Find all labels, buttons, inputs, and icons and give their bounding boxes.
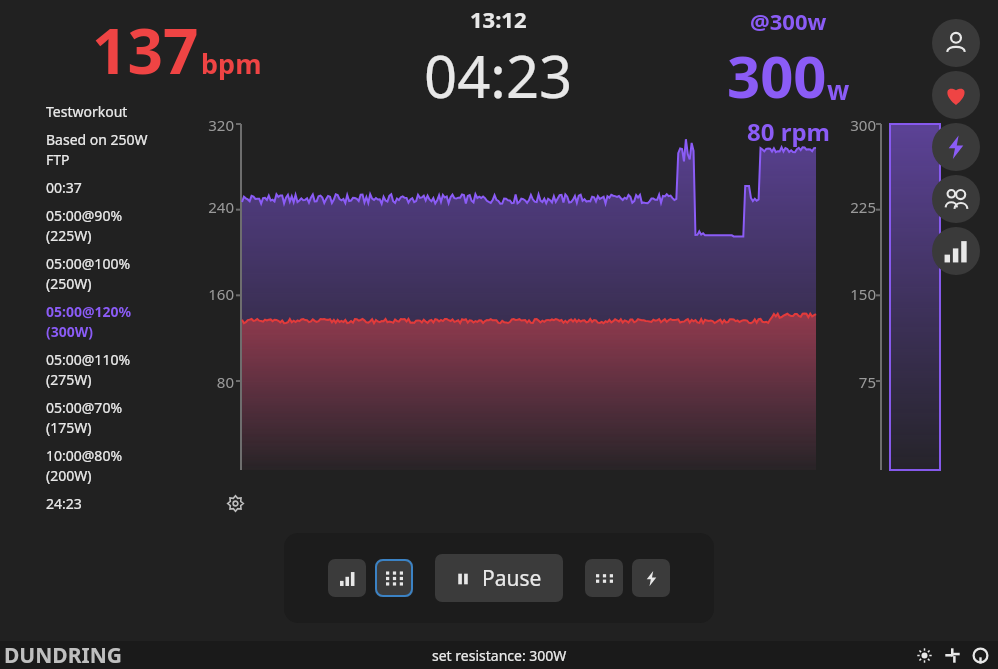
staticText: 04:23 bbox=[424, 36, 573, 115]
staticText: 137 bbox=[92, 8, 199, 92]
staticText: 05:00@90% bbox=[46, 206, 123, 225]
button[interactable]: Toggle theme bbox=[914, 645, 934, 665]
staticText: 225 bbox=[832, 197, 876, 217]
button[interactable]: Heart rate bbox=[932, 71, 980, 119]
button[interactable]: 05:00@110% bbox=[46, 348, 196, 391]
button[interactable]: DUNDRING bbox=[4, 641, 122, 669]
button[interactable]: Grid view bbox=[375, 559, 413, 597]
button[interactable]: Testworkout bbox=[46, 100, 196, 123]
staticText: 24:23 bbox=[46, 494, 82, 513]
button[interactable]: 24:23 bbox=[46, 492, 196, 515]
button[interactable]: 05:00@100% bbox=[46, 252, 196, 295]
staticText: bpm bbox=[201, 45, 262, 82]
button[interactable]: 05:00@70% bbox=[46, 396, 196, 439]
button[interactable]: 00:37 bbox=[46, 176, 196, 199]
staticText: 00:37 bbox=[46, 178, 82, 197]
button[interactable]: Groups bbox=[932, 175, 980, 223]
staticText: DUNDRING bbox=[4, 641, 122, 669]
button[interactable]: Layout bbox=[585, 559, 623, 597]
staticText: Based on 250W bbox=[46, 130, 148, 149]
staticText: w bbox=[827, 72, 850, 107]
staticText: 05:00@100% bbox=[46, 254, 131, 273]
button[interactable]: GitHub bbox=[970, 645, 990, 665]
staticText: 240 bbox=[186, 197, 234, 217]
staticText: FTP bbox=[46, 150, 70, 169]
staticText: @300w bbox=[750, 6, 827, 36]
staticText: 05:00@110% bbox=[46, 350, 131, 369]
button[interactable]: Power bbox=[932, 123, 980, 171]
staticText: (175W) bbox=[46, 418, 92, 437]
staticText: 05:00@70% bbox=[46, 398, 123, 417]
staticText: (225W) bbox=[46, 226, 92, 245]
button[interactable]: Profile bbox=[932, 19, 980, 67]
staticText: Pause bbox=[482, 564, 542, 593]
button[interactable]: Power zones bbox=[632, 559, 670, 597]
staticText: 13:12 bbox=[470, 4, 527, 34]
staticText: (275W) bbox=[46, 370, 92, 389]
button[interactable]: Chart view bbox=[328, 559, 366, 597]
staticText: 320 bbox=[186, 115, 234, 135]
staticText: (200W) bbox=[46, 466, 92, 485]
staticText: set resistance: 300W bbox=[432, 646, 567, 665]
button[interactable]: 05:00@90% bbox=[46, 204, 196, 247]
staticText: 300 bbox=[727, 36, 827, 115]
staticText: 75 bbox=[832, 372, 876, 392]
button[interactable]: 10:00@80% bbox=[46, 444, 196, 487]
button[interactable]: Based on 250W bbox=[46, 128, 196, 171]
staticText: (300W) bbox=[46, 322, 94, 341]
staticText: Testworkout bbox=[46, 102, 128, 121]
staticText: 80 bbox=[186, 372, 234, 392]
button[interactable]: Chart settings bbox=[224, 492, 246, 514]
staticText: 300 bbox=[832, 115, 876, 135]
button[interactable]: Pause bbox=[435, 554, 563, 602]
staticText: 160 bbox=[186, 284, 234, 304]
button[interactable]: Statistics bbox=[932, 227, 980, 275]
button[interactable]: 05:00@120% bbox=[46, 300, 196, 343]
staticText: 150 bbox=[832, 284, 876, 304]
staticText: (250W) bbox=[46, 274, 92, 293]
staticText: 10:00@80% bbox=[46, 446, 123, 465]
button[interactable]: Slack bbox=[942, 645, 962, 665]
staticText: 05:00@120% bbox=[46, 302, 132, 321]
staticText: 80 rpm bbox=[747, 115, 830, 148]
